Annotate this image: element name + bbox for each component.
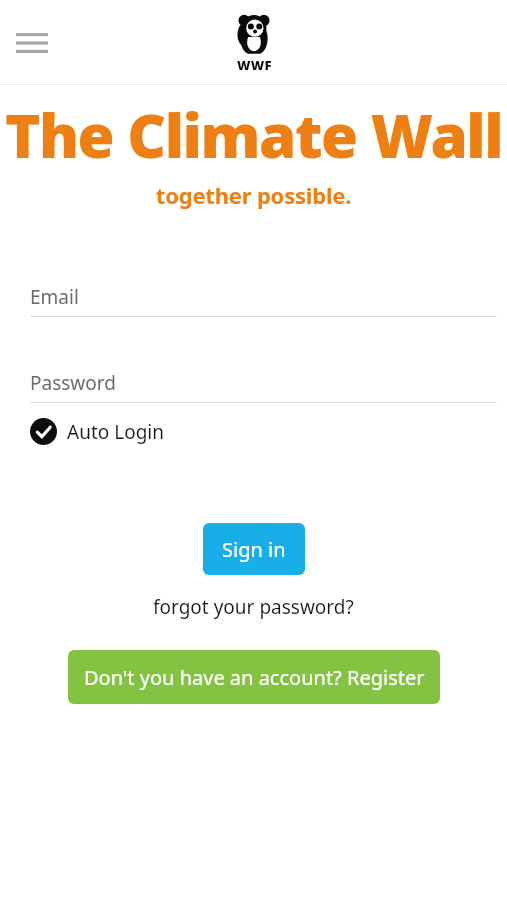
staticText: forgot your password?: [153, 594, 354, 620]
staticText: Auto Login: [67, 419, 164, 445]
button[interactable]: Password: [30, 370, 497, 403]
button[interactable]: Open navigation menu: [8, 19, 56, 67]
staticText: together possible.: [0, 180, 507, 210]
staticText: Sign in: [222, 536, 286, 563]
staticText: Don't you have an account? Register: [84, 664, 425, 691]
button[interactable]: Don't you have an account? Register: [68, 650, 440, 704]
staticText: WWF: [237, 56, 272, 74]
button[interactable]: forgot your password?: [145, 592, 362, 622]
button[interactable]: Auto Login: [30, 418, 164, 445]
other: WWF logo: [227, 12, 281, 74]
staticText: The Climate Wall: [0, 94, 507, 176]
staticText: Email: [30, 284, 79, 310]
button[interactable]: Email: [30, 284, 497, 317]
staticText: Password: [30, 370, 116, 396]
button[interactable]: Sign in: [203, 523, 305, 575]
